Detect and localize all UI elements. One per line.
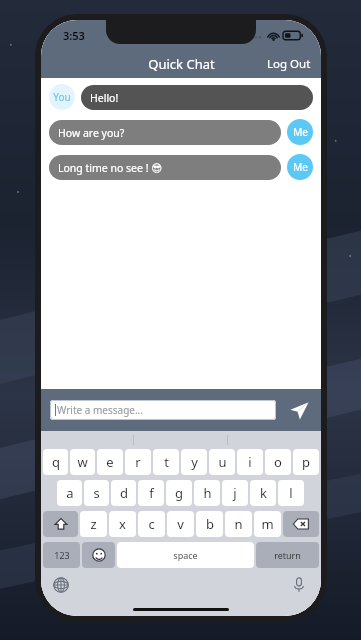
button[interactable]: p (293, 449, 319, 475)
button[interactable]: t (153, 449, 179, 475)
staticText: space (173, 549, 198, 561)
button[interactable]: 123 (43, 542, 80, 568)
staticText: t (164, 453, 169, 471)
staticText: c (148, 515, 155, 533)
button[interactable]: y (181, 449, 207, 475)
staticText: Hello! (90, 91, 119, 105)
button[interactable]: k (250, 480, 276, 506)
staticText: i (248, 453, 252, 471)
staticText: 3:53 (63, 28, 85, 43)
button[interactable]: return (256, 542, 319, 568)
button[interactable]: q (43, 449, 68, 475)
staticText: z (90, 515, 97, 533)
staticText: n (234, 515, 243, 533)
staticText: h (203, 484, 212, 502)
button[interactable]: m (254, 511, 281, 537)
button[interactable]: n (225, 511, 252, 537)
staticText: You (53, 90, 71, 104)
button[interactable]: s (84, 480, 109, 506)
staticText: Quick Chat (148, 55, 215, 73)
button[interactable]: d (111, 480, 136, 506)
button[interactable]: Dictation (289, 575, 309, 595)
button[interactable]: c (138, 511, 165, 537)
button[interactable]: Change keyboard language (51, 575, 71, 595)
button[interactable]: l (278, 480, 304, 506)
button[interactable]: j (222, 480, 248, 506)
button[interactable]: v (167, 511, 194, 537)
button[interactable]: Long time no see ! 😎 (49, 154, 313, 180)
staticText: b (206, 515, 214, 533)
staticText: a (66, 484, 74, 502)
staticText: q (52, 453, 60, 471)
button[interactable]: Backspace (283, 511, 319, 537)
button[interactable]: z (80, 511, 107, 537)
button[interactable]: h (194, 480, 220, 506)
staticText: s (93, 484, 100, 502)
staticText: o (274, 453, 282, 471)
button[interactable]: b (196, 511, 223, 537)
staticText: Me (293, 125, 308, 139)
staticText: j (233, 484, 237, 502)
staticText: 123 (54, 549, 70, 561)
staticText: Me (293, 160, 308, 174)
staticText: d (120, 484, 128, 502)
staticText: u (218, 453, 227, 471)
button[interactable]: space (117, 542, 254, 568)
staticText: Write a message... (57, 403, 143, 417)
staticText: p (302, 453, 310, 471)
staticText: e (106, 453, 114, 471)
staticText: r (135, 453, 141, 471)
button[interactable]: r (125, 449, 151, 475)
staticText: How are you? (58, 126, 125, 140)
staticText: y (191, 453, 198, 471)
button[interactable]: Shift (43, 511, 78, 537)
button[interactable]: o (265, 449, 291, 475)
button[interactable]: f (138, 480, 164, 506)
button[interactable]: Send (286, 397, 312, 423)
staticText: f (149, 484, 154, 502)
staticText: w (77, 453, 88, 471)
staticText: v (177, 515, 184, 533)
button[interactable]: u (209, 449, 235, 475)
button[interactable]: How are you? (49, 119, 313, 145)
button[interactable]: Emoji (82, 542, 115, 568)
staticText: k (260, 484, 267, 502)
staticText: Log Out (267, 56, 311, 72)
button[interactable]: You (49, 84, 313, 110)
staticText: Long time no see ! 😎 (58, 161, 163, 175)
staticText: m (261, 515, 274, 533)
button[interactable]: a (57, 480, 82, 506)
staticText: l (289, 484, 293, 502)
button[interactable]: e (97, 449, 123, 475)
button[interactable]: w (70, 449, 95, 475)
staticText: x (119, 515, 126, 533)
button[interactable]: Write a message... (50, 400, 276, 420)
button[interactable]: i (237, 449, 263, 475)
staticText: return (274, 549, 301, 561)
button[interactable]: x (109, 511, 136, 537)
staticText: g (175, 484, 183, 502)
button[interactable]: Log Out (257, 52, 321, 76)
button[interactable]: g (166, 480, 192, 506)
